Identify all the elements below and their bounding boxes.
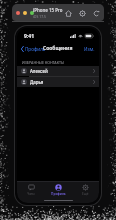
staticText: iOS 17.5 [33, 14, 46, 19]
button[interactable]: Профиль [21, 46, 46, 52]
staticText: iPhone 15 Pro [33, 7, 63, 13]
staticText: Ещё [82, 192, 89, 196]
button[interactable]: Settings [78, 9, 86, 17]
button[interactable]: Close [16, 11, 20, 15]
button[interactable]: Изм. [84, 46, 95, 52]
staticText: Чаты [27, 192, 35, 196]
staticText: Профиль [51, 192, 66, 196]
staticText: Профиль [25, 46, 46, 52]
staticText: Изм. [84, 46, 95, 52]
staticText: Дарья [30, 79, 44, 85]
button[interactable]: Ещё [72, 181, 99, 198]
button[interactable]: Чаты [17, 181, 45, 198]
button[interactable]: Дарья [17, 77, 99, 87]
button[interactable]: Rotate [92, 9, 100, 17]
staticText: Алексей [30, 68, 48, 74]
button[interactable]: Home [64, 9, 72, 17]
button[interactable]: Профиль [45, 181, 72, 198]
button[interactable]: Алексей [17, 66, 99, 76]
staticText: 9:41 [24, 33, 34, 40]
button[interactable]: Minimise [23, 11, 27, 15]
button[interactable]: Maximise [30, 11, 34, 15]
staticText: Сообщения [43, 45, 73, 52]
staticText: ИЗБРАННЫЕ КОНТАКТЫ [22, 60, 65, 65]
